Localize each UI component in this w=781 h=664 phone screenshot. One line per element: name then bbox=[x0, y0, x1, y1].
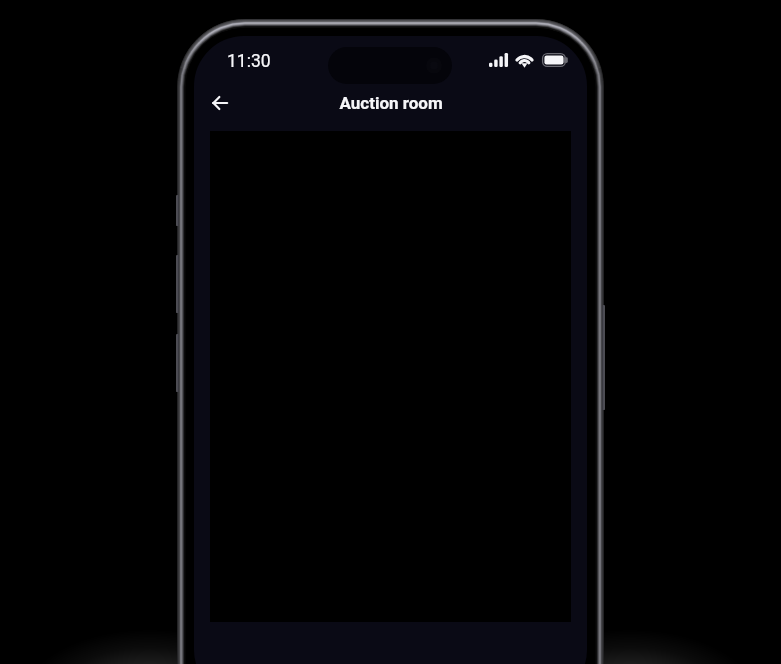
button[interactable]: Back bbox=[200, 83, 240, 123]
staticText: 11:30 bbox=[227, 51, 271, 72]
staticText: Auction room bbox=[339, 93, 443, 113]
